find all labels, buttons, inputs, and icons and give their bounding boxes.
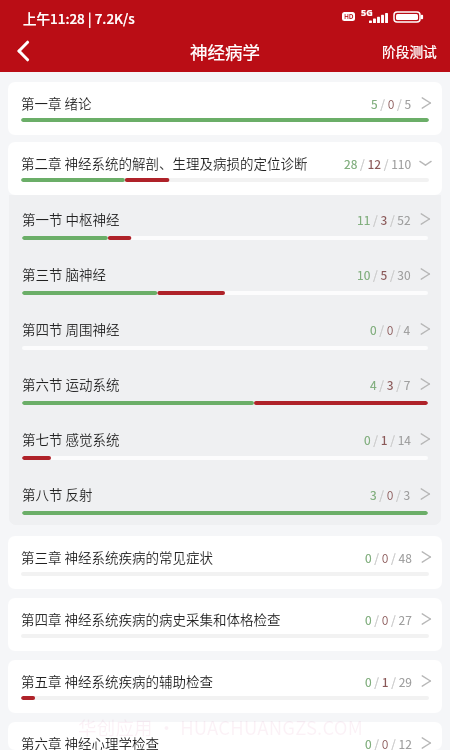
staticText: 10 / 5 / 30	[357, 266, 411, 283]
button[interactable]: 返回	[2, 30, 44, 72]
button[interactable]: 第五章 神经系统疾病的辅助检查	[8, 660, 442, 713]
staticText: 3 / 0 / 3	[370, 486, 411, 503]
staticText: 第二章 神经系统的解剖、生理及病损的定位诊断	[21, 153, 344, 173]
staticText: 第四章 神经系统疾病的病史采集和体格检查	[21, 609, 365, 629]
staticText: 神经病学	[190, 39, 260, 64]
staticText: 0 / 0 / 27	[365, 611, 412, 628]
staticText: 第六节 运动系统	[22, 374, 370, 394]
staticText: 11 / 3 / 52	[357, 211, 411, 228]
staticText: 第三节 脑神经	[22, 264, 357, 284]
button[interactable]: 阶段测试	[366, 31, 450, 71]
staticText: 5 / 0 / 5	[371, 95, 412, 112]
staticText: HD	[344, 12, 354, 21]
staticText: 第六章 神经心理学检查	[21, 733, 365, 750]
staticText: 第一节 中枢神经	[22, 209, 357, 229]
staticText: 第五章 神经系统疾病的辅助检查	[21, 671, 365, 691]
button[interactable]: 第四节 周围神经	[9, 305, 441, 360]
button[interactable]: 第八节 反射	[9, 470, 441, 525]
staticText: 第八节 反射	[22, 484, 370, 504]
staticText: 0 / 0 / 48	[365, 549, 412, 566]
button[interactable]: 第三节 脑神经	[9, 250, 441, 305]
button[interactable]: 第二章 神经系统的解剖、生理及病损的定位诊断	[8, 142, 442, 195]
staticText: 0 / 1 / 14	[364, 431, 411, 448]
staticText: 0 / 0 / 4	[370, 321, 411, 338]
staticText: 第一章 绪论	[21, 93, 371, 113]
staticText: 上午11:28 | 7.2K/s	[23, 8, 135, 28]
button[interactable]: 第三章 神经系统疾病的常见症状	[8, 536, 442, 589]
staticText: 阶段测试	[382, 41, 437, 61]
staticText: 5G	[361, 6, 373, 18]
staticText: 华创应用 · HUACHUANGZS.COM	[78, 714, 364, 741]
button[interactable]: 第一章 绪论	[8, 82, 442, 135]
button[interactable]: 第七节 感觉系统	[9, 415, 441, 470]
button[interactable]: 第一节 中枢神经	[9, 195, 441, 250]
staticText: 0 / 0 / 12	[365, 735, 412, 750]
button[interactable]: 第六节 运动系统	[9, 360, 441, 415]
button[interactable]: 第四章 神经系统疾病的病史采集和体格检查	[8, 598, 442, 651]
staticText: 第七节 感觉系统	[22, 429, 364, 449]
staticText: 0 / 1 / 29	[365, 673, 412, 690]
staticText: 第三章 神经系统疾病的常见症状	[21, 547, 365, 567]
staticText: 4 / 3 / 7	[370, 376, 411, 393]
staticText: 28 / 12 / 110	[344, 155, 412, 172]
button[interactable]: 第六章 神经心理学检查	[8, 722, 442, 750]
staticText: 第四节 周围神经	[22, 319, 370, 339]
